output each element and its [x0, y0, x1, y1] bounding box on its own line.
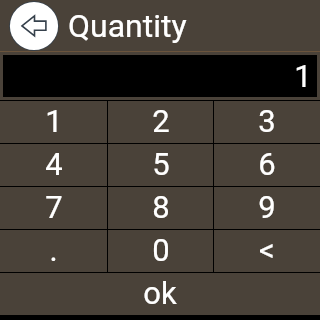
button[interactable]: Entered quantity: [3, 55, 317, 97]
button[interactable]: 7: [0, 186, 107, 229]
button[interactable]: 5: [107, 143, 214, 186]
staticText: 1: [45, 103, 63, 139]
staticText: Quantity: [68, 7, 187, 45]
button[interactable]: 2: [107, 100, 214, 143]
staticText: 5: [152, 146, 170, 182]
staticText: 2: [152, 103, 170, 139]
button[interactable]: 0: [107, 229, 214, 272]
button[interactable]: 6: [213, 143, 320, 186]
staticText: 4: [45, 146, 63, 182]
staticText: 1: [294, 58, 312, 94]
staticText: 0: [152, 232, 170, 268]
button[interactable]: Backspace: [213, 229, 320, 272]
button[interactable]: 4: [0, 143, 107, 186]
staticText: 9: [258, 189, 276, 225]
staticText: 6: [258, 146, 276, 182]
button[interactable]: 9: [213, 186, 320, 229]
button[interactable]: ok: [0, 272, 320, 315]
button[interactable]: 8: [107, 186, 214, 229]
staticText: 7: [45, 189, 63, 225]
staticText: <: [259, 232, 275, 268]
staticText: 3: [258, 103, 276, 139]
staticText: 8: [152, 189, 170, 225]
button[interactable]: Decimal point: [0, 229, 107, 272]
staticText: ok: [143, 275, 177, 311]
button[interactable]: 3: [213, 100, 320, 143]
button[interactable]: 1: [0, 100, 107, 143]
button[interactable]: Back: [9, 1, 59, 51]
staticText: .: [49, 232, 58, 268]
